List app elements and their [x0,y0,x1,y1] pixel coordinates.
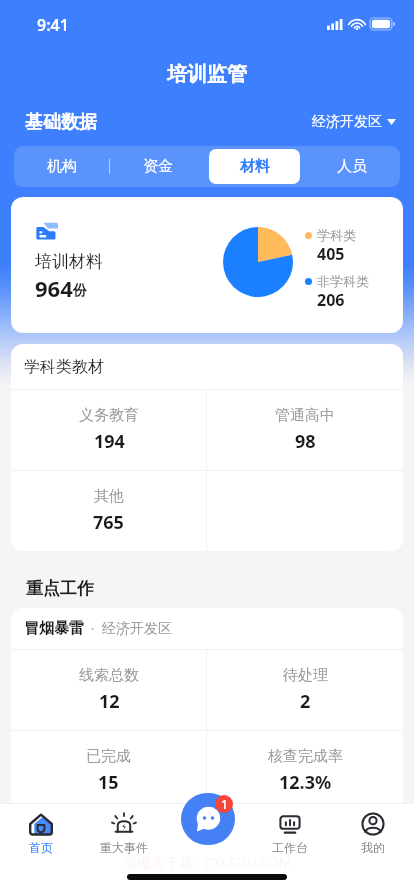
staticText: 1 [221,796,228,812]
button[interactable]: 工作台 [248,803,331,863]
staticText: 学科类 [317,227,356,243]
staticText: 人员 [337,157,367,176]
staticText: 工作台 [272,840,308,855]
staticText: 培训监管 [167,62,247,87]
staticText: 98 [295,429,316,454]
staticText: 12 [99,689,120,714]
staticText: 15 [98,770,119,795]
staticText: 重大事件 [100,840,148,855]
staticText: 964 [35,273,73,303]
staticText: 机构 [47,157,77,176]
staticText: 12.3% [279,770,332,795]
staticText: 206 [317,289,345,311]
staticText: 晨曦乐下载 · CXLEDU.COM [123,853,292,872]
staticText: 材料 [240,157,270,176]
staticText: 基础数据 [25,111,97,133]
staticText: 待处理 [283,666,328,685]
button[interactable]: 资金 [113,149,203,184]
staticText: 2 [300,689,311,714]
staticText: 核查完成率 [268,747,343,766]
staticText: 经济开发区 [312,113,382,131]
staticText: 线索总数 [79,666,139,685]
staticText: 已完成 [86,747,131,766]
staticText: 非学科类 [317,273,369,289]
staticText: 管通高中 [275,406,335,425]
staticText: 培训材料 [35,251,103,272]
staticText: 765 [93,510,124,535]
button[interactable]: 首页 [0,803,82,863]
staticText: 405 [317,243,345,265]
button[interactable]: 机构 [17,149,107,184]
button[interactable]: 经济开发区 [312,113,396,131]
staticText: 首页 [29,840,53,855]
staticText: 9:41 [37,14,69,36]
staticText: 重点工作 [26,578,94,599]
staticText: 资金 [143,157,173,176]
staticText: 学科类教材 [24,357,104,377]
staticText: 194 [94,429,125,454]
staticText: 义务教育 [79,406,139,425]
button[interactable]: 材料 [209,149,300,184]
button[interactable]: 人员 [306,149,397,184]
staticText: 我的 [361,840,385,855]
staticText: 冒烟暴雷 [24,619,84,638]
button[interactable]: 培训材料 [11,197,403,333]
staticText: · [84,620,102,638]
button[interactable]: 重大事件 [82,803,165,863]
button[interactable]: 我的 [331,803,414,863]
staticText: 其他 [94,487,124,506]
staticText: 份 [73,282,87,300]
staticText: 经济开发区 [102,620,172,638]
button[interactable]: 消息 [181,793,235,845]
